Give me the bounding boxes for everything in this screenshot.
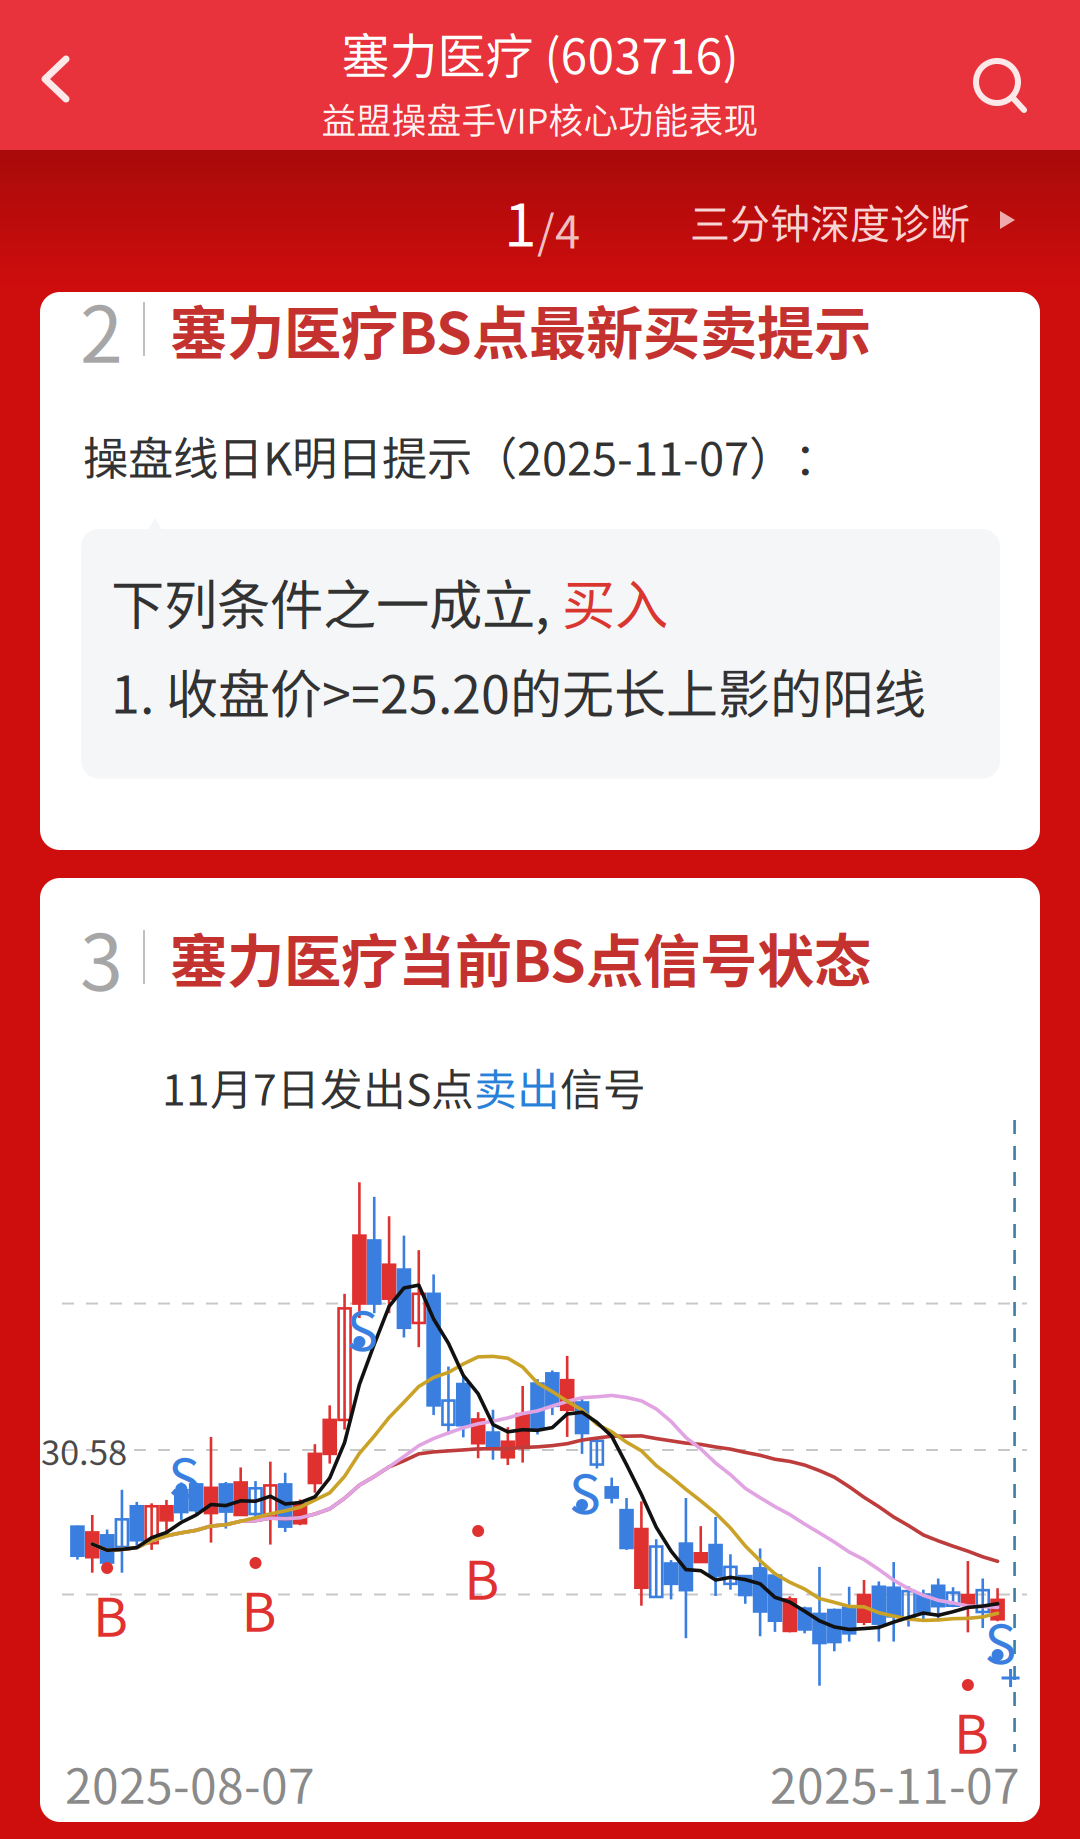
staticText: 买入 — [562, 563, 668, 640]
staticText: 3 — [80, 901, 123, 1013]
staticText: 三分钟深度诊断 — [690, 192, 970, 250]
staticText: 卖出 — [474, 1056, 560, 1118]
staticText: S — [985, 1602, 1017, 1679]
staticText: 2025-08-07 — [65, 1748, 315, 1817]
staticText: B — [954, 1692, 989, 1769]
staticText: 塞力医疗当前BS点信号状态 — [170, 915, 871, 998]
staticText: 11月7日发出S点 — [162, 1056, 474, 1118]
staticText: 2 — [80, 273, 123, 385]
staticText: B — [241, 1570, 276, 1647]
staticText: S — [569, 1452, 601, 1529]
staticText: S — [346, 1289, 378, 1366]
staticText: 30.58 — [41, 1425, 127, 1475]
staticText: 2025-11-07 — [770, 1748, 1020, 1817]
staticText: 益盟操盘手VIP核心功能表现 — [321, 94, 758, 144]
button[interactable]: Back — [0, 29, 112, 121]
button[interactable]: Search — [968, 29, 1080, 121]
staticText: 塞力医疗 (603716) — [341, 18, 738, 88]
staticText: S — [168, 1436, 200, 1513]
staticText: B — [93, 1575, 128, 1652]
staticText: 1 — [504, 178, 537, 263]
button[interactable]: 三分钟深度诊断 — [690, 192, 1018, 250]
staticText: 信号 — [560, 1056, 646, 1118]
staticText: /4 — [537, 196, 580, 261]
staticText: 操盘线日K明日提示（2025-11-07）： — [83, 423, 839, 489]
staticText: B — [464, 1538, 499, 1615]
staticText: 下列条件之一成立, — [111, 563, 562, 640]
staticText: 塞力医疗BS点最新买卖提示 — [170, 287, 871, 370]
staticText: 1. 收盘价>=25.20的无长上影的阳线 — [111, 653, 926, 728]
